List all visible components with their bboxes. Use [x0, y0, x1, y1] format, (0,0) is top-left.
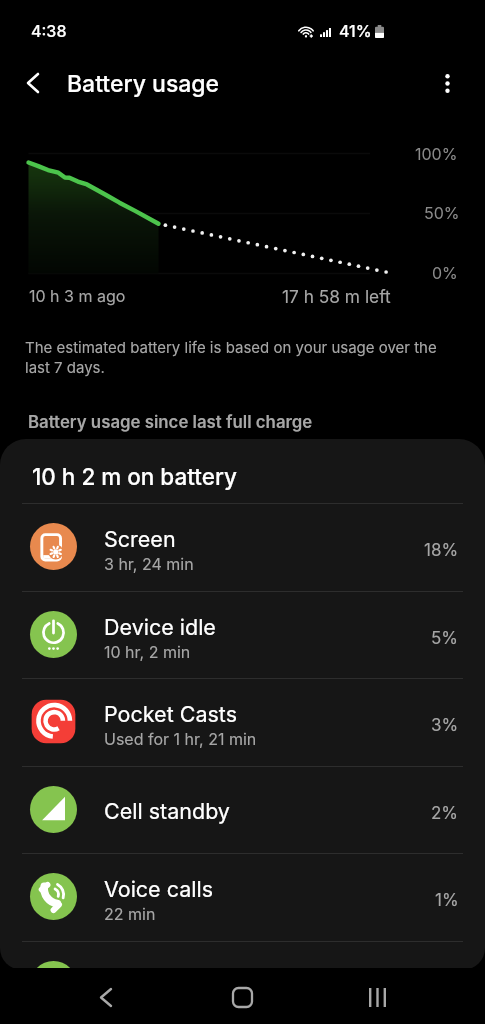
- button[interactable]: Home: [214, 968, 270, 1024]
- staticText: The estimated battery life is based on y…: [25, 338, 437, 377]
- staticText: 10 h 2 m on battery: [32, 463, 237, 490]
- staticText: 5%: [431, 628, 459, 649]
- staticText: 50%: [424, 203, 460, 222]
- staticText: 22 min: [104, 904, 156, 923]
- button[interactable]: Device idle: [0, 592, 485, 680]
- staticText: 10 hr, 2 min: [104, 642, 191, 661]
- staticText: Cell standby: [104, 798, 230, 824]
- button[interactable]: Voice calls: [0, 854, 485, 942]
- staticText: Voice calls: [104, 876, 214, 902]
- staticText: 10 h 3 m ago: [29, 286, 126, 305]
- staticText: 0%: [432, 263, 458, 282]
- staticText: 1%: [435, 890, 459, 911]
- staticText: Battery usage since last full charge: [28, 412, 313, 432]
- button[interactable]: Recents: [349, 968, 405, 1024]
- staticText: Screen: [104, 526, 176, 552]
- button[interactable]: Pocket Casts: [0, 679, 485, 767]
- staticText: 41%: [339, 21, 372, 40]
- button[interactable]: Back: [15, 65, 51, 101]
- button[interactable]: Screen: [0, 504, 485, 592]
- staticText: Battery usage: [67, 70, 220, 98]
- button[interactable]: Android OS: [0, 942, 485, 970]
- button[interactable]: More options: [429, 65, 465, 101]
- staticText: 18%: [424, 540, 459, 561]
- staticText: 3%: [431, 715, 459, 736]
- staticText: Used for 1 hr, 21 min: [104, 729, 257, 748]
- staticText: Pocket Casts: [104, 701, 238, 727]
- staticText: 17 h 58 m left: [282, 286, 391, 307]
- staticText: 100%: [415, 144, 458, 163]
- staticText: 3 hr, 24 min: [104, 554, 194, 573]
- button[interactable]: Back: [78, 968, 134, 1024]
- staticText: Device idle: [104, 614, 216, 640]
- staticText: 4:38: [31, 21, 67, 40]
- button[interactable]: Cell standby: [0, 767, 485, 855]
- staticText: 2%: [431, 803, 459, 824]
